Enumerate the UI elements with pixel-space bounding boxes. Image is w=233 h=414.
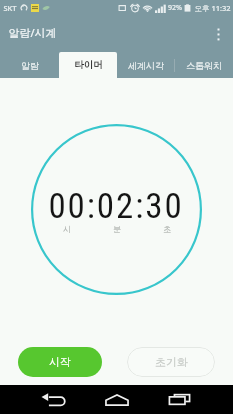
- button[interactable]: 타이머: [59, 52, 117, 78]
- staticText: 타이머: [74, 59, 103, 71]
- staticText: 초기화: [155, 355, 188, 369]
- staticText: 초: [163, 224, 171, 234]
- staticText: 시: [63, 224, 71, 234]
- button[interactable]: 세계시각: [117, 52, 175, 78]
- staticText: 92%: [168, 3, 182, 13]
- button[interactable]: 초기화: [127, 347, 215, 377]
- button[interactable]: 알람: [0, 52, 59, 78]
- button[interactable]: More options: [203, 16, 233, 52]
- staticText: 세계시각: [128, 60, 164, 71]
- staticText: 스톱워치: [186, 60, 222, 71]
- button[interactable]: Back: [36, 385, 70, 414]
- staticText: 00:02:30: [48, 186, 184, 227]
- staticText: SKT: [3, 3, 17, 13]
- staticText: 오후 11:32: [194, 3, 231, 13]
- button[interactable]: 시작: [18, 347, 102, 377]
- button[interactable]: 스톱워치: [175, 52, 233, 78]
- button[interactable]: Home: [100, 385, 134, 414]
- staticText: 시작: [49, 355, 71, 369]
- staticText: 분: [113, 224, 121, 234]
- button[interactable]: Recent apps: [162, 385, 196, 414]
- staticText: 알람: [21, 60, 39, 71]
- staticText: 알람/시계: [8, 25, 57, 40]
